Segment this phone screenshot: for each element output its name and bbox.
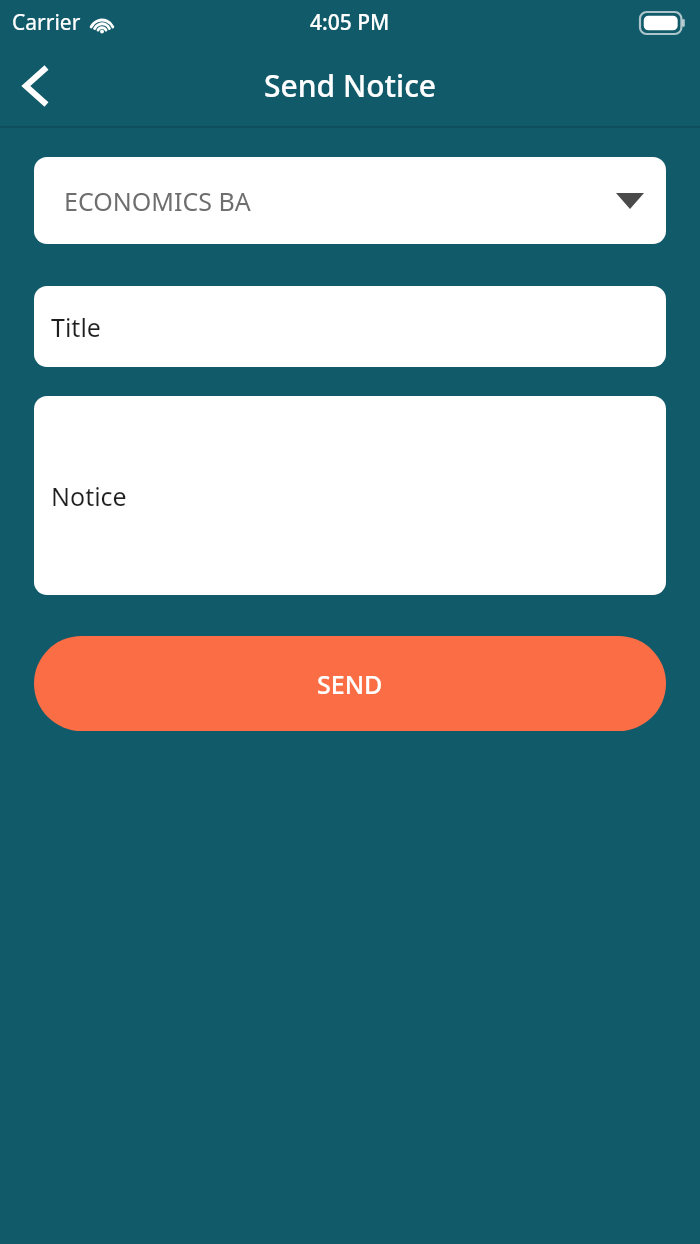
button[interactable]: Notice	[34, 396, 666, 595]
staticText: Carrier	[12, 8, 81, 37]
staticText: Send Notice	[264, 65, 437, 106]
button[interactable]: SEND	[34, 636, 666, 731]
staticText: Title	[51, 310, 101, 344]
button[interactable]: Back	[0, 50, 72, 122]
staticText: 4:05 PM	[310, 8, 390, 37]
button[interactable]: Title	[34, 286, 666, 367]
button[interactable]: ECONOMICS BA	[34, 157, 666, 244]
staticText: Notice	[51, 479, 127, 513]
staticText: ECONOMICS BA	[64, 184, 251, 218]
staticText: SEND	[317, 667, 383, 701]
